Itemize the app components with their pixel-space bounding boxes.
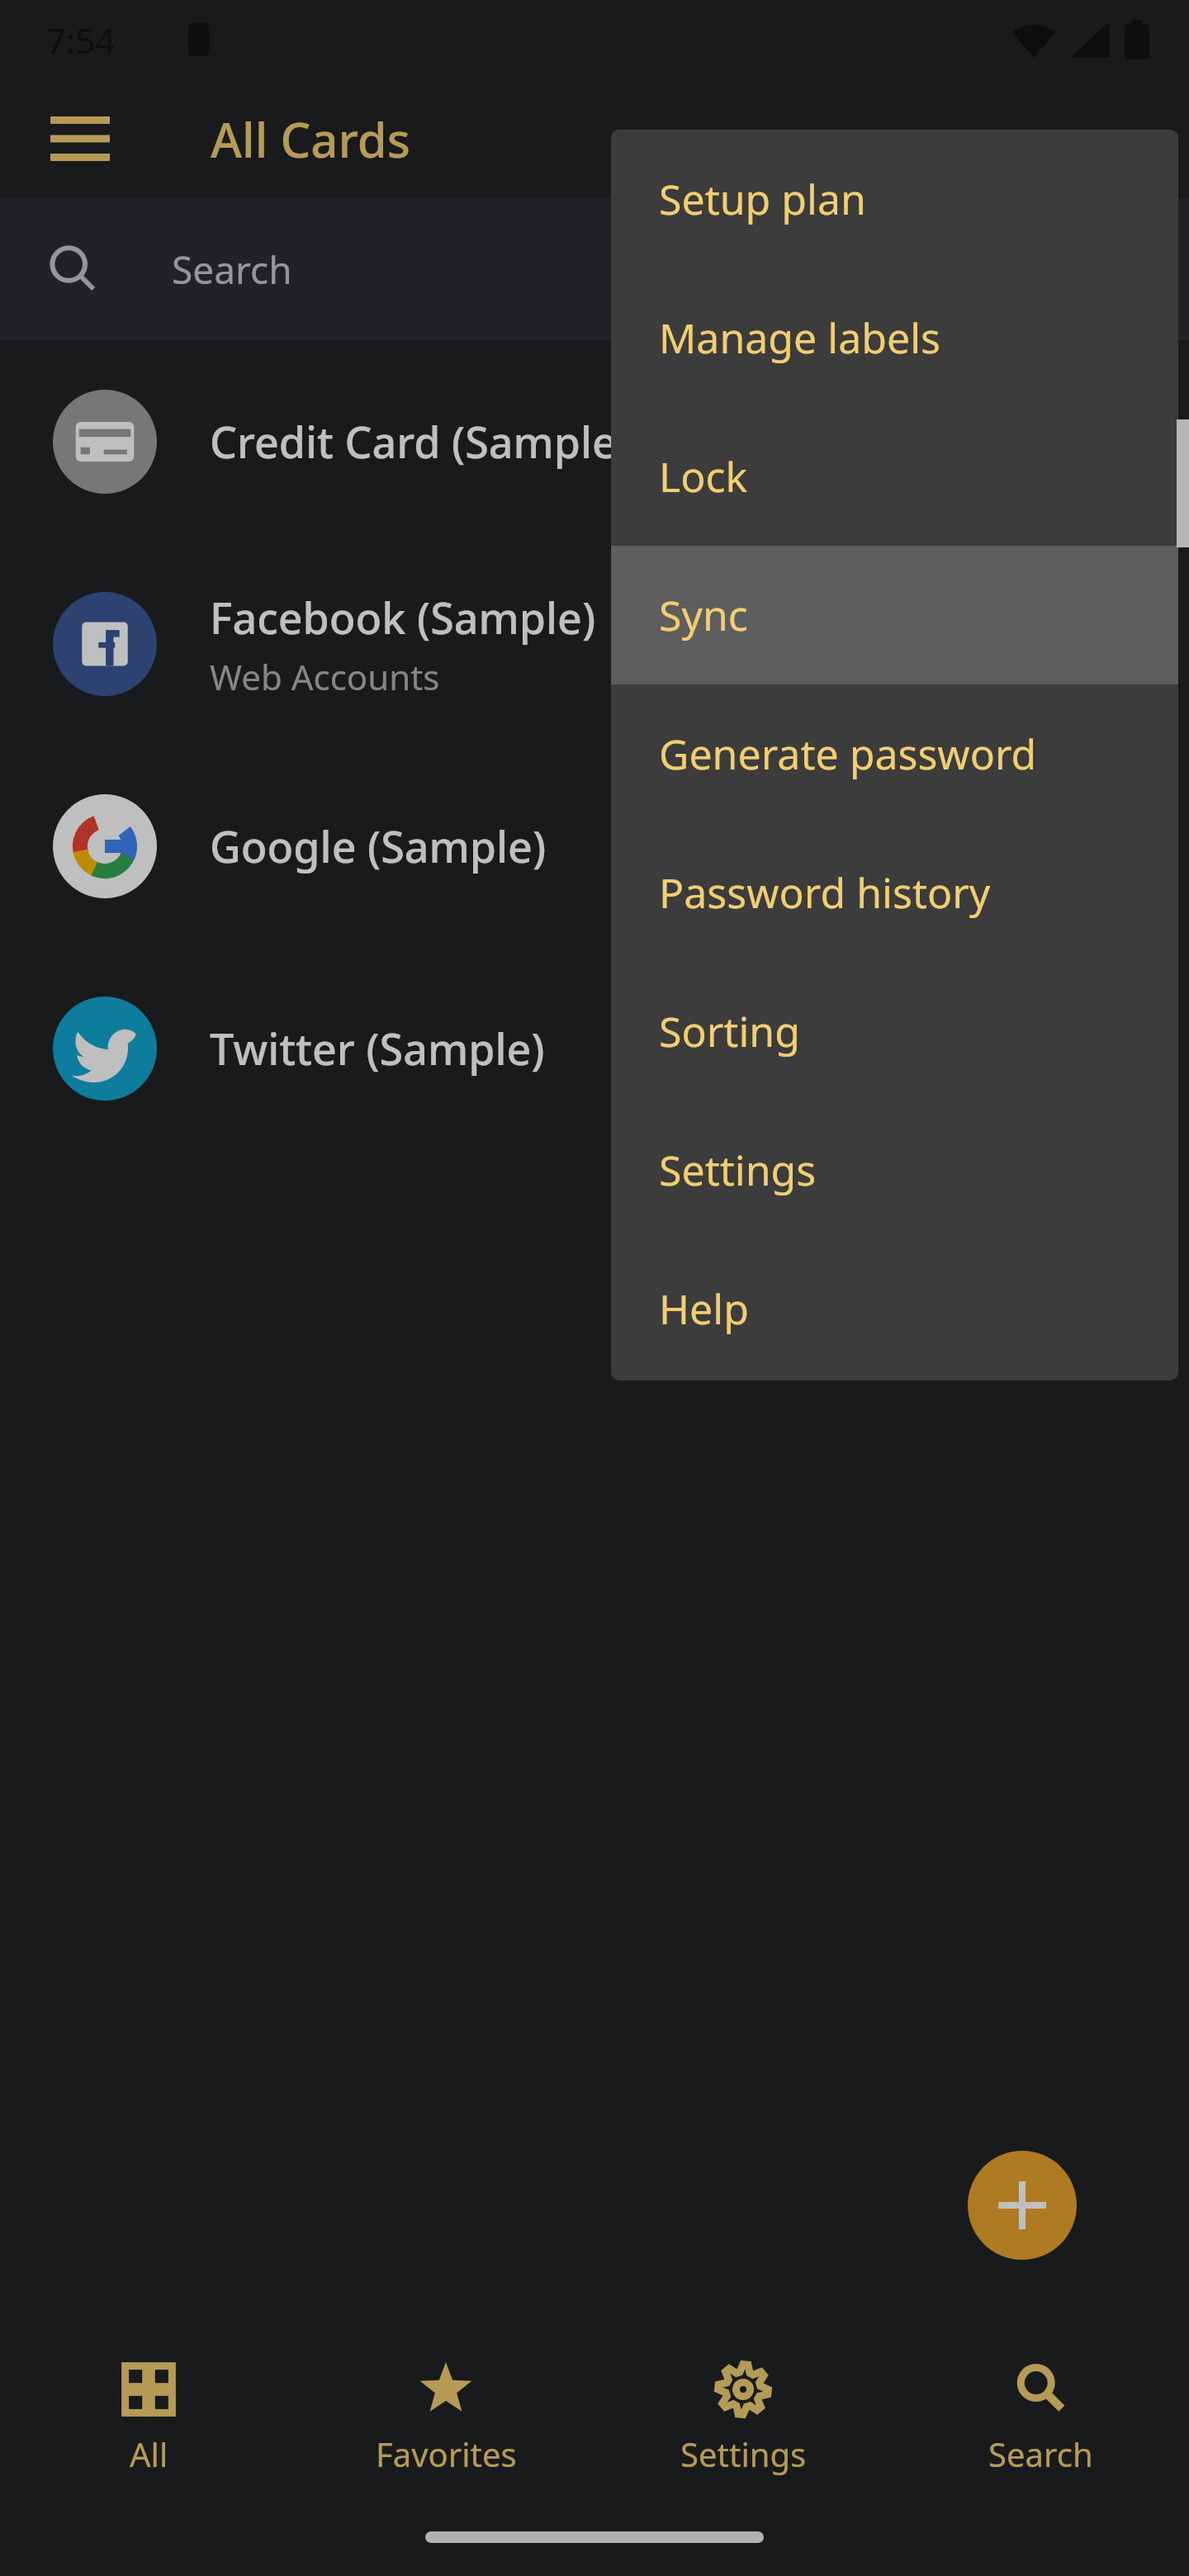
- button[interactable]: Facebook (Sample): [0, 542, 1189, 745]
- staticText: Search: [172, 244, 292, 296]
- staticText: Facebook (Sample): [210, 588, 596, 646]
- button[interactable]: Settings: [594, 2337, 892, 2502]
- staticText: Google (Sample): [210, 817, 547, 875]
- button[interactable]: Search: [892, 2337, 1189, 2502]
- button[interactable]: Twitter (Sample): [0, 947, 1189, 1149]
- button[interactable]: Password history: [611, 823, 1178, 962]
- staticText: All Cards: [211, 107, 410, 172]
- staticText: Setup plan: [659, 171, 866, 227]
- staticText: Help: [659, 1281, 749, 1337]
- staticText: Settings: [659, 1142, 817, 1198]
- staticText: Favorites: [376, 2432, 517, 2476]
- staticText: Twitter (Sample): [210, 1019, 545, 1077]
- button[interactable]: Settings: [611, 1101, 1178, 1239]
- staticText: Search: [988, 2432, 1093, 2476]
- button[interactable]: Manage labels: [611, 268, 1178, 407]
- button[interactable]: Sorting: [611, 962, 1178, 1101]
- staticText: 7:54: [46, 17, 116, 64]
- button[interactable]: Generate password: [611, 684, 1178, 823]
- button[interactable]: All: [0, 2337, 297, 2502]
- button[interactable]: Google (Sample): [0, 745, 1189, 947]
- button[interactable]: Sync: [611, 546, 1178, 684]
- button[interactable]: Help: [611, 1239, 1178, 1378]
- button[interactable]: Credit Card (Sample): [0, 340, 1189, 542]
- staticText: Lock: [659, 448, 748, 504]
- staticText: Sorting: [659, 1003, 800, 1059]
- button[interactable]: Add card: [968, 2151, 1077, 2260]
- staticText: Generate password: [659, 726, 1037, 782]
- staticText: Password history: [659, 864, 991, 921]
- button[interactable]: Favorites: [297, 2337, 594, 2502]
- staticText: All: [130, 2432, 168, 2476]
- button[interactable]: Search: [0, 198, 1189, 340]
- staticText: Settings: [680, 2432, 807, 2476]
- staticText: Manage labels: [659, 310, 941, 366]
- staticText: Web Accounts: [210, 653, 440, 700]
- button[interactable]: Setup plan: [611, 130, 1178, 268]
- staticText: Sync: [659, 587, 748, 643]
- button[interactable]: Open navigation drawer: [28, 87, 132, 191]
- staticText: Credit Card (Sample): [210, 412, 631, 471]
- button[interactable]: Lock: [611, 407, 1178, 546]
